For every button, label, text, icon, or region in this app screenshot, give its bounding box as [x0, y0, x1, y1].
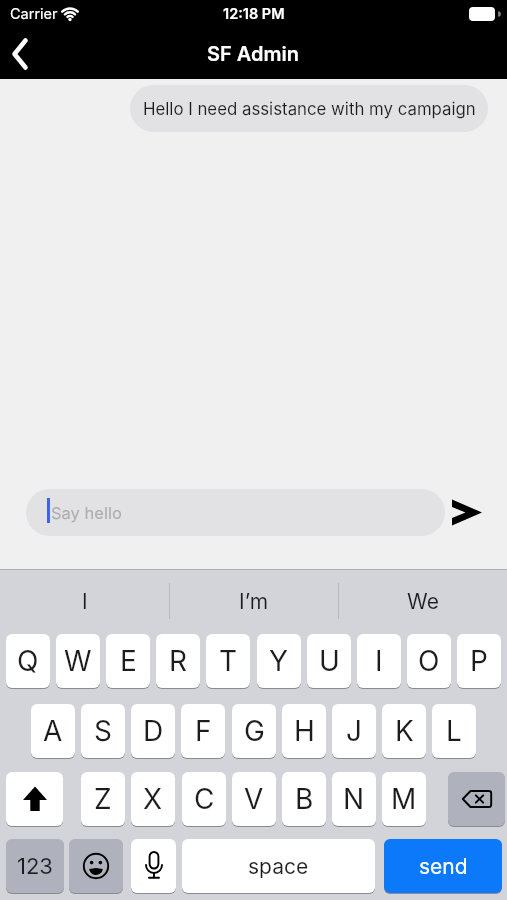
staticText: S [94, 714, 112, 748]
staticText: C [194, 782, 215, 816]
button[interactable]: O [407, 634, 451, 688]
staticText: 123 [17, 853, 53, 880]
staticText: Say hello [51, 503, 122, 523]
button[interactable]: P [457, 634, 501, 688]
staticText: N [343, 782, 365, 816]
button[interactable] [6, 772, 63, 826]
button[interactable] [448, 772, 505, 826]
staticText: F [195, 714, 212, 748]
staticText: M [391, 782, 417, 816]
staticText: We [407, 589, 439, 614]
staticText: O [418, 644, 440, 678]
button[interactable]: X [131, 772, 175, 826]
staticText: Z [94, 782, 112, 816]
staticText: P [470, 644, 488, 678]
button[interactable]: F [181, 704, 225, 758]
staticText: Y [269, 644, 289, 678]
staticText: J [346, 714, 362, 748]
staticText: X [143, 782, 163, 816]
button[interactable]: A [31, 704, 75, 758]
staticText: space [248, 854, 309, 879]
staticText: E [120, 644, 137, 678]
button[interactable]: send [384, 839, 502, 893]
button[interactable]: Hello I need assistance with my campaign [130, 85, 488, 132]
button[interactable]: I [357, 634, 401, 688]
button[interactable]: R [156, 634, 200, 688]
button[interactable]: Z [81, 772, 125, 826]
button[interactable]: T [206, 634, 250, 688]
button[interactable]: L [432, 704, 476, 758]
button[interactable]: space [182, 839, 375, 893]
button[interactable]: C [182, 772, 226, 826]
staticText: U [319, 644, 340, 678]
staticText: 12:18 PM [223, 5, 285, 23]
staticText: SF Admin [207, 42, 300, 66]
button[interactable]: B [282, 772, 326, 826]
button[interactable]: J [332, 704, 376, 758]
button[interactable]: V [232, 772, 276, 826]
button[interactable] [131, 839, 176, 893]
staticText: A [43, 714, 63, 748]
button[interactable]: G [232, 704, 276, 758]
staticText: L [446, 714, 462, 748]
button[interactable]: 123 [6, 839, 64, 893]
staticText: H [294, 714, 315, 748]
staticText: W [64, 644, 92, 678]
button[interactable]: We [338, 569, 507, 634]
button[interactable]: H [282, 704, 326, 758]
staticText: G [244, 714, 265, 748]
button[interactable] [444, 489, 494, 536]
button[interactable]: K [382, 704, 426, 758]
staticText: I [82, 589, 88, 614]
button[interactable]: D [131, 704, 175, 758]
button[interactable]: I [0, 569, 169, 634]
staticText: Q [17, 644, 39, 678]
staticText: R [169, 644, 188, 678]
button[interactable]: S [81, 704, 125, 758]
button[interactable] [69, 839, 123, 893]
staticText: Carrier [10, 5, 58, 23]
staticText: I [375, 644, 383, 678]
staticText: T [219, 644, 238, 678]
staticText: I’m [239, 589, 269, 614]
button[interactable]: Say hello [26, 489, 445, 536]
button[interactable]: U [307, 634, 351, 688]
staticText: send [419, 854, 468, 879]
button[interactable]: E [106, 634, 150, 688]
staticText: V [244, 782, 264, 816]
button[interactable]: W [56, 634, 100, 688]
staticText: D [143, 714, 164, 748]
button[interactable]: M [382, 772, 426, 826]
staticText: Hello I need assistance with my campaign [143, 99, 476, 119]
staticText: K [395, 714, 414, 748]
button[interactable]: N [332, 772, 376, 826]
staticText: B [295, 782, 314, 816]
button[interactable]: Q [6, 634, 50, 688]
button[interactable] [0, 28, 40, 79]
button[interactable]: I’m [169, 569, 338, 634]
button[interactable]: Y [257, 634, 301, 688]
